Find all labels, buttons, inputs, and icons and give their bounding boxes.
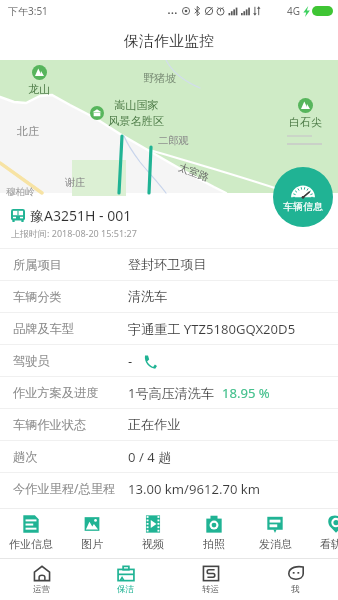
staticText: 18.95 % <box>222 384 270 402</box>
staticText: 车辆作业状态 <box>13 417 87 432</box>
staticText: 作业信息 <box>9 537 53 551</box>
button[interactable]: 车辆信息 <box>273 167 333 227</box>
staticText: 13.00 km/9612.70 km <box>128 480 261 498</box>
button[interactable]: 发消息 <box>247 515 303 551</box>
staticText: 龙山 <box>28 82 50 96</box>
staticText: 图片 <box>81 537 103 551</box>
staticText: 所属项目 <box>13 257 62 272</box>
staticText: 品牌及车型 <box>13 321 74 336</box>
staticText: 我 <box>291 584 300 595</box>
staticText: 4G <box>287 4 300 18</box>
staticText: 1号高压清洗车 <box>128 384 215 402</box>
staticText: 宇通重工 YTZ5180GQX20D5 <box>128 320 296 338</box>
button[interactable]: 图片 <box>64 515 120 551</box>
staticText: 穆柏岭 <box>6 186 35 198</box>
staticText: 视频 <box>142 537 164 551</box>
staticText: 运营 <box>33 584 51 595</box>
button[interactable]: 作业信息 <box>3 515 59 551</box>
staticText: 看轨迹 <box>320 537 338 551</box>
staticText: 保洁作业监控 <box>124 32 214 51</box>
staticText: 二郎观 <box>158 134 189 147</box>
staticText: 转运 <box>202 584 220 595</box>
button[interactable]: 拍照 <box>186 515 242 551</box>
staticText: 风景名胜区 <box>108 114 164 128</box>
staticText: - <box>128 352 133 370</box>
button[interactable]: 看轨迹 <box>308 515 338 551</box>
staticText: 今作业里程/总里程 <box>13 480 116 497</box>
staticText: 清洗车 <box>128 288 168 305</box>
button[interactable]: 视频 <box>125 515 181 551</box>
staticText: 发消息 <box>259 537 292 551</box>
button[interactable]: 转运 <box>168 565 253 595</box>
staticText: 正在作业 <box>128 416 181 433</box>
button[interactable]: 保洁 <box>84 565 168 595</box>
staticText: 上报时间: 2018-08-20 15:51:27 <box>11 227 137 239</box>
staticText: 驾驶员 <box>13 353 50 368</box>
staticText: 作业方案及进度 <box>13 385 99 400</box>
staticText: 车辆分类 <box>13 289 62 304</box>
staticText: 保洁 <box>117 584 135 595</box>
staticText: 登封环卫项目 <box>128 256 207 273</box>
button[interactable]: 我 <box>253 565 338 595</box>
staticText: 趟次 <box>13 449 38 464</box>
button[interactable]: 拨打电话 <box>142 354 157 369</box>
staticText: 下午3:51 <box>8 4 48 18</box>
staticText: 车辆信息 <box>283 200 323 213</box>
staticText: 白石尖 <box>289 115 322 129</box>
staticText: 豫A3251H - 001 <box>30 206 132 225</box>
staticText: 太室路 <box>177 161 211 184</box>
button[interactable]: 运营 <box>0 565 84 595</box>
staticText: 拍照 <box>203 537 225 551</box>
staticText: 嵩山国家 <box>114 98 159 112</box>
staticText: 北庄 <box>17 124 39 138</box>
staticText: 谢庄 <box>65 176 86 189</box>
staticText: 野猪坡 <box>143 71 176 85</box>
staticText: 0 / 4 趟 <box>128 448 172 466</box>
